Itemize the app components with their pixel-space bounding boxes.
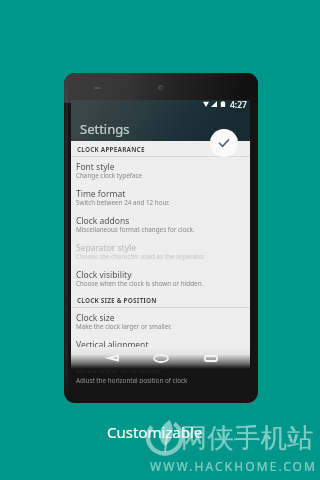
staticText: Vertical alignment — [76, 339, 149, 351]
staticText: Make the clock larger or smaller. — [76, 322, 172, 331]
button[interactable]: Confirm — [210, 129, 238, 157]
button[interactable]: Recent apps — [202, 353, 220, 363]
staticText: Adjust the vertical position of clock — [76, 349, 179, 358]
button[interactable]: Clock size — [71, 308, 250, 335]
button[interactable]: Font style — [71, 157, 250, 184]
button[interactable]: Clock addons — [71, 211, 250, 238]
button[interactable]: Vertical alignment — [71, 335, 250, 362]
staticText: Font style — [76, 161, 115, 173]
staticText: Customizable — [107, 422, 203, 442]
button[interactable]: Clock visibility — [71, 265, 250, 292]
staticText: CLOCK APPEARANCE — [77, 145, 145, 154]
staticText: Choose the character used as the separat… — [76, 252, 205, 261]
staticText: Clock addons — [76, 215, 130, 227]
staticText: Miscellaneous format changes for clock. — [76, 225, 195, 234]
button[interactable]: Home — [151, 353, 171, 363]
staticText: Time format — [76, 188, 126, 200]
button[interactable]: Time format — [71, 184, 250, 211]
staticText: 4:27 — [230, 99, 247, 111]
staticText: Change clock typeface — [76, 171, 143, 180]
staticText: Clock visibility — [76, 269, 132, 281]
staticText: Horizontal alignment — [76, 366, 161, 373]
staticText: CLOCK SIZE & POSITION — [77, 296, 157, 305]
staticText: WWW.HACKHOME.COM — [150, 458, 318, 474]
staticText: Adjust the horizontal position of clock — [76, 376, 188, 383]
button[interactable]: Back — [104, 353, 122, 363]
staticText: 网侠手机站 — [181, 421, 314, 454]
button[interactable]: Separator style — [71, 238, 250, 265]
staticText: Switch between 24 and 12 hour. — [76, 198, 170, 207]
button[interactable]: Horizontal alignment — [71, 362, 250, 369]
staticText: Settings — [80, 120, 130, 138]
staticText: Choose when the clock is shown or hidden… — [76, 279, 204, 288]
staticText: Clock size — [76, 312, 115, 324]
staticText: Separator style — [76, 242, 136, 254]
